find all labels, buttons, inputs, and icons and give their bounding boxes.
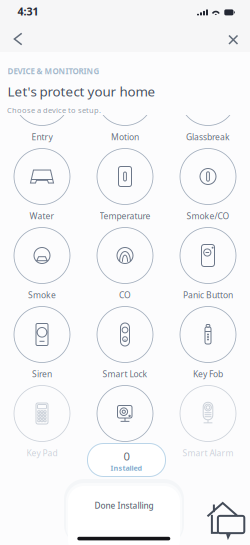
button[interactable]: Smoke [0,227,83,306]
button[interactable]: Entry [0,69,83,148]
staticText: Entry [31,131,52,143]
staticText: CO [119,289,131,301]
button[interactable]: Back [4,25,31,52]
staticText: Installed [110,463,142,473]
staticText: Key Fob [193,368,223,380]
staticText: Temperature [99,210,150,222]
button[interactable]: Glassbreak [166,69,249,148]
staticText: DEVICE & MONITORING [7,66,99,77]
button[interactable]: Temperature [83,148,166,227]
button[interactable]: Camera [83,385,166,464]
staticText: Choose a device to setup. [7,105,101,115]
button[interactable]: Panic Button [166,227,249,306]
staticText: Smoke [28,289,56,301]
button[interactable]: Key Pad [0,385,83,464]
staticText: Camera [109,447,140,459]
staticText: Smart Alarm [182,447,233,459]
button[interactable]: Smart Alarm [166,385,249,464]
button[interactable]: Close [220,26,246,54]
button[interactable]: Help [202,497,250,543]
button[interactable]: Smoke/CO [166,148,249,227]
staticText: Siren [32,368,52,380]
staticText: Smart Lock [102,368,147,380]
button[interactable]: Key Fob [166,306,249,385]
staticText: 4:31 [17,4,38,19]
staticText: Key Pad [26,447,57,459]
staticText: Water [29,210,54,222]
staticText: Let's protect your home [7,82,155,100]
button[interactable]: Motion [83,69,166,148]
staticText: Glassbreak [186,131,230,143]
button[interactable]: Water [0,148,83,227]
button[interactable]: CO [83,227,166,306]
staticText: Done Installing [94,500,153,511]
button[interactable]: Siren [0,306,83,385]
staticText: Motion [111,131,139,143]
staticText: Panic Button [183,289,233,301]
staticText: Smoke/CO [186,210,229,222]
button[interactable]: Smart Lock [83,306,166,385]
staticText: 0 [123,448,129,464]
